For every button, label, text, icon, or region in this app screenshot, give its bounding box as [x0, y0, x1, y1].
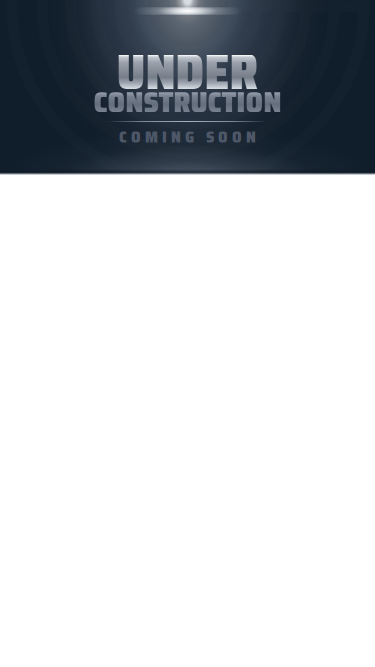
staticText: C O M I N G S O O N: [119, 124, 256, 150]
